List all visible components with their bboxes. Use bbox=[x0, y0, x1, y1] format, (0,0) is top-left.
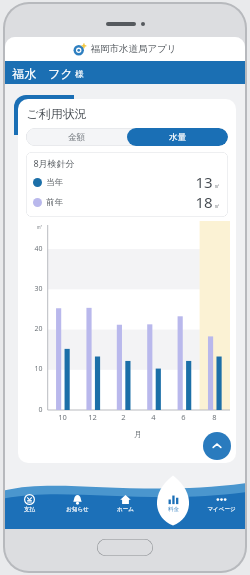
staticText: 8月検針分 bbox=[33, 157, 75, 169]
button[interactable]: マイページ bbox=[197, 489, 245, 529]
button[interactable]: お知らせ bbox=[53, 489, 101, 529]
staticText: 20 bbox=[34, 324, 43, 334]
staticText: 支払 bbox=[24, 506, 35, 513]
staticText: ご利用状況 bbox=[26, 106, 87, 121]
staticText: 18 bbox=[195, 192, 213, 212]
staticText: 30 bbox=[34, 284, 43, 294]
staticText: 福岡市水道局アプリ bbox=[90, 43, 177, 55]
staticText: ㎥ bbox=[36, 223, 43, 231]
staticText: 8 bbox=[212, 412, 217, 422]
staticText: 前年 bbox=[46, 197, 63, 208]
staticText: 10 bbox=[34, 364, 43, 374]
staticText: ㎥ bbox=[214, 182, 220, 190]
staticText: 料金 bbox=[168, 506, 179, 513]
button[interactable]: ページ上部へ戻る bbox=[203, 432, 231, 460]
staticText: 金額 bbox=[68, 132, 85, 143]
staticText: 4 bbox=[151, 412, 156, 422]
staticText: 月 bbox=[134, 429, 142, 439]
staticText: 6 bbox=[181, 412, 186, 422]
staticText: マイページ bbox=[207, 506, 236, 513]
button[interactable]: 水量 bbox=[127, 128, 228, 146]
staticText: お知らせ bbox=[66, 506, 89, 513]
staticText: 様 bbox=[75, 69, 84, 80]
staticText: 12 bbox=[88, 412, 97, 422]
button[interactable]: 金額 bbox=[26, 128, 127, 146]
button[interactable]: 支払 bbox=[5, 489, 53, 529]
staticText: 10 bbox=[58, 412, 67, 422]
staticText: 40 bbox=[34, 244, 43, 254]
staticText: 13 bbox=[195, 172, 213, 192]
staticText: 水量 bbox=[169, 132, 186, 143]
button[interactable]: 料金 bbox=[149, 489, 197, 529]
staticText: 0 bbox=[38, 405, 43, 415]
staticText: 福水 フク bbox=[12, 65, 73, 81]
staticText: 2 bbox=[121, 412, 126, 422]
button[interactable]: ホーム bbox=[101, 489, 149, 529]
staticText: 当年 bbox=[46, 177, 63, 188]
staticText: ホーム bbox=[117, 506, 134, 513]
staticText: ㎥ bbox=[214, 202, 220, 210]
